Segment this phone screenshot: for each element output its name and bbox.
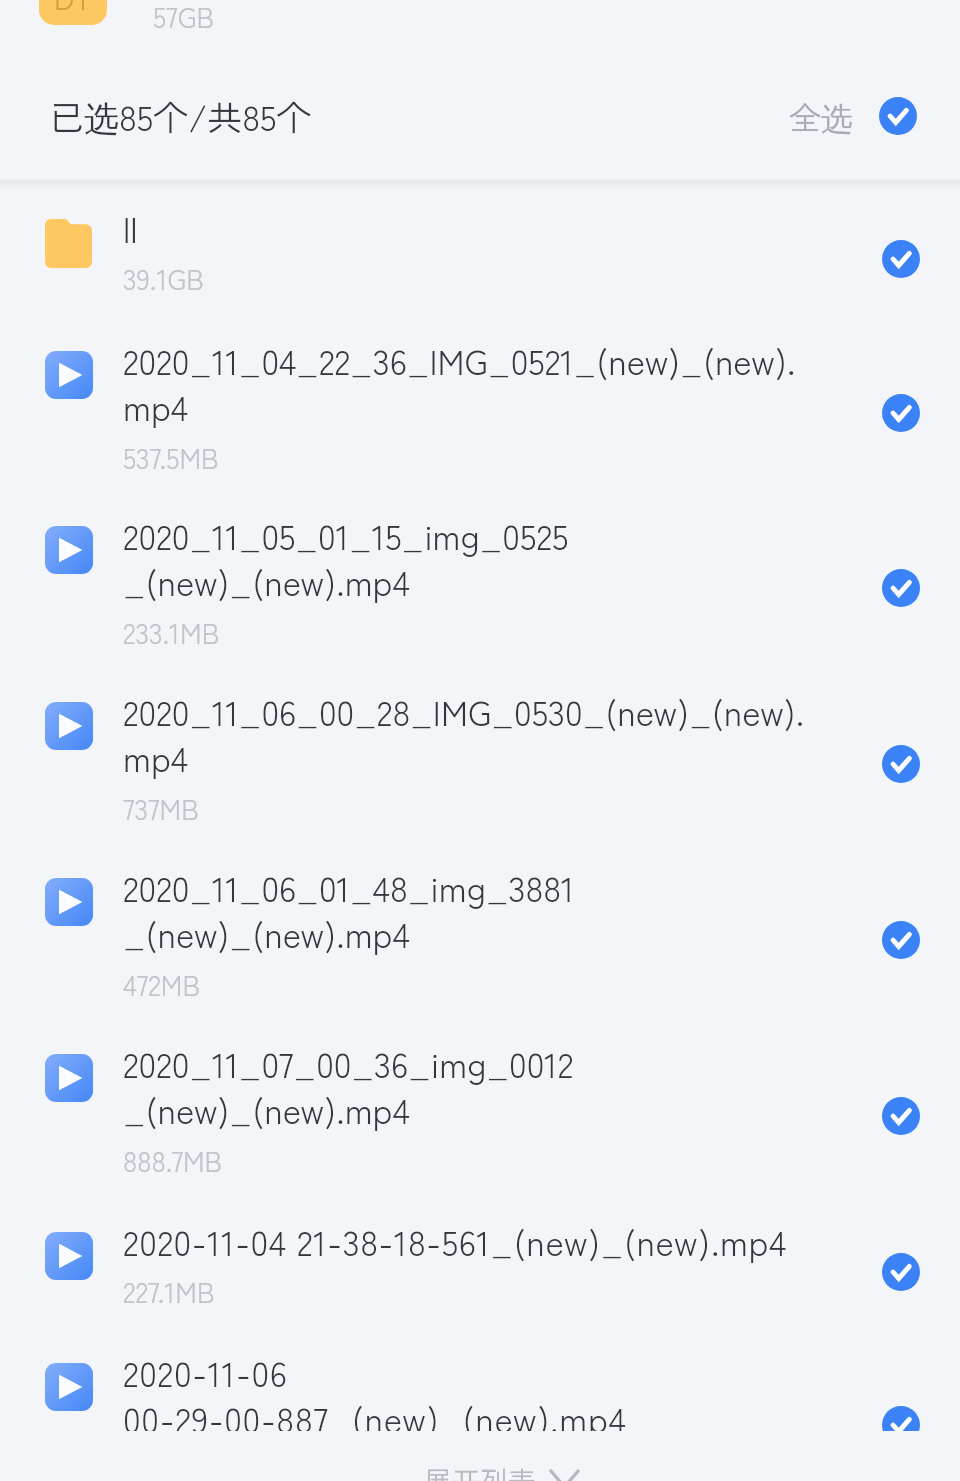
button[interactable]: Video — [0, 317, 960, 493]
other: Selected — [882, 1406, 920, 1444]
staticText: ll — [123, 202, 138, 253]
staticText: 2020_11_05_01_15_img_0525 _(new)_(new).m… — [123, 509, 569, 606]
other: Video — [45, 878, 93, 926]
other: Selected — [882, 921, 920, 959]
staticText: 537.5MB — [123, 437, 219, 478]
other: Video — [45, 702, 93, 750]
button[interactable]: Folder — [0, 185, 960, 317]
other: Selected — [882, 394, 920, 432]
other: Folder — [45, 219, 92, 268]
staticText: 2020_11_06_01_48_img_3881 _(new)_(new).m… — [123, 861, 575, 958]
staticText: 57GB — [153, 0, 215, 37]
staticText: 233.1MB — [123, 612, 220, 653]
button[interactable]: Video — [0, 492, 960, 668]
button[interactable]: 已选85个/共85个 — [0, 60, 960, 181]
other: Video — [45, 526, 93, 574]
other: Selected — [882, 240, 920, 278]
other: Video — [45, 1232, 93, 1280]
other: Selected — [882, 569, 920, 607]
other: Selected — [882, 1097, 920, 1135]
staticText: 2020_11_06_00_28_IMG_0530_(new)_(new). m… — [123, 685, 805, 782]
other: Video — [45, 1054, 93, 1102]
button[interactable]: 展开列表 — [0, 1431, 960, 1481]
other: Selected — [882, 1253, 920, 1291]
button[interactable]: Video — [0, 844, 960, 1020]
staticText: 2020_11_04_22_36_IMG_0521_(new)_(new). m… — [123, 334, 796, 431]
staticText: 展开列表 — [424, 1460, 537, 1481]
other: Expand list — [549, 1469, 580, 1481]
staticText: 2020_11_07_00_36_img_0012 _(new)_(new).m… — [123, 1037, 574, 1134]
button[interactable]: Video — [0, 668, 960, 844]
staticText: 2020-11-04 21-38-18-561_(new)_(new).mp4 — [123, 1215, 787, 1266]
staticText: 已选85个/共85个 — [49, 90, 312, 141]
staticText: 227.1MB — [123, 1271, 215, 1312]
other: Video — [45, 1363, 93, 1411]
staticText: 472MB — [123, 964, 201, 1005]
other: Video — [45, 351, 93, 399]
button[interactable]: Video — [0, 1198, 960, 1330]
staticText: 39.1GB — [123, 258, 204, 299]
staticText: DT — [54, 0, 92, 18]
staticText: 2020-11-06 00-29-00-887_(new)_(new).mp4 — [123, 1346, 627, 1443]
button[interactable]: Video — [0, 1020, 960, 1196]
staticText: 737MB — [123, 788, 199, 829]
staticText: 888.7MB — [123, 1140, 223, 1181]
other: Selected — [879, 97, 917, 135]
staticText: 全选 — [789, 93, 854, 140]
button[interactable]: Video — [0, 1329, 960, 1481]
other: Selected — [882, 745, 920, 783]
